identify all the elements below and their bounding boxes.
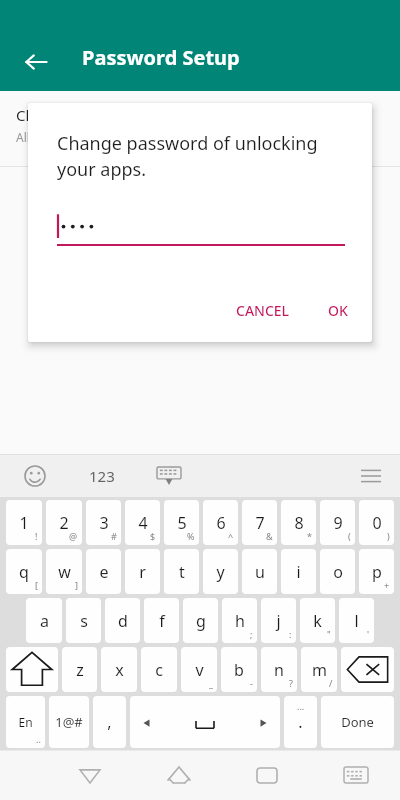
button[interactable]: Space	[130, 696, 280, 748]
button[interactable]: k	[300, 598, 335, 643]
button[interactable]: d	[105, 598, 140, 643]
staticText: 8	[294, 512, 304, 534]
staticText: *	[307, 530, 312, 542]
button[interactable]: Hide keyboard	[151, 461, 187, 491]
staticText: 2	[59, 512, 69, 534]
button[interactable]: x	[101, 647, 137, 692]
staticText: l	[354, 610, 359, 632]
button[interactable]: 4	[125, 500, 160, 545]
staticText: (	[348, 530, 351, 542]
staticText: %	[187, 530, 195, 542]
staticText: 7	[255, 512, 265, 534]
staticText: ,	[107, 711, 112, 733]
button[interactable]: Recents	[247, 755, 287, 795]
button[interactable]: q	[6, 549, 42, 594]
button[interactable]: z	[62, 647, 97, 692]
button[interactable]: Switch keyboard	[336, 755, 376, 795]
staticText: ;	[250, 628, 253, 640]
button[interactable]: Emoji	[20, 461, 50, 491]
staticText: -	[250, 677, 253, 689]
staticText: z	[76, 659, 84, 681]
staticText: @	[69, 530, 78, 542]
button[interactable]: n	[261, 647, 297, 692]
button[interactable]: ,	[93, 696, 126, 748]
staticText: r	[139, 561, 146, 583]
staticText: v	[195, 659, 204, 681]
staticText: 6	[216, 512, 226, 534]
button[interactable]: r	[125, 549, 160, 594]
button[interactable]: g	[183, 598, 218, 643]
button[interactable]: 0	[359, 500, 394, 545]
staticText: '	[367, 628, 370, 640]
button[interactable]: Backspace	[341, 647, 394, 692]
staticText: f	[159, 610, 165, 632]
button[interactable]: m	[301, 647, 337, 692]
staticText: u	[255, 561, 265, 583]
staticText: Change password of unlocking your apps.	[57, 131, 347, 181]
staticText: )	[387, 530, 390, 542]
button[interactable]: 1@#	[49, 696, 89, 748]
button[interactable]: Done	[321, 696, 394, 748]
button[interactable]: Back	[14, 40, 58, 84]
button[interactable]: v	[181, 647, 217, 692]
button[interactable]: p	[359, 549, 394, 594]
staticText: Password Setup	[82, 44, 240, 71]
button[interactable]: c	[141, 647, 177, 692]
button[interactable]: CANCEL	[227, 293, 299, 328]
button[interactable]: Back	[70, 755, 110, 795]
button[interactable]: h	[222, 598, 257, 643]
staticText: +	[384, 579, 390, 591]
staticText: 1	[19, 512, 29, 534]
button[interactable]	[57, 210, 345, 246]
button[interactable]: j	[261, 598, 296, 643]
staticText: p	[372, 561, 382, 583]
staticText: Done	[341, 713, 374, 731]
button[interactable]: u	[242, 549, 277, 594]
staticText: e	[99, 561, 109, 583]
staticText: 0	[372, 512, 382, 534]
button[interactable]: 9	[320, 500, 355, 545]
staticText: ...	[297, 700, 305, 712]
staticText: g	[196, 610, 206, 632]
button[interactable]: e	[86, 549, 121, 594]
button[interactable]: i	[281, 549, 316, 594]
button[interactable]: f	[144, 598, 179, 643]
button[interactable]: y	[203, 549, 238, 594]
button[interactable]: Shift	[6, 647, 58, 692]
staticText: En	[18, 714, 33, 730]
staticText: h	[235, 610, 245, 632]
button[interactable]: l	[339, 598, 374, 643]
staticText: t	[179, 561, 185, 583]
staticText: Allows you to change the unlock password	[16, 129, 255, 145]
staticText: o	[333, 561, 343, 583]
staticText: d	[118, 610, 128, 632]
button[interactable]: .	[284, 696, 317, 748]
staticText: y	[216, 561, 225, 583]
button[interactable]: 6	[203, 500, 238, 545]
button[interactable]: o	[320, 549, 355, 594]
staticText: Change password	[16, 105, 143, 125]
button[interactable]: Menu	[356, 461, 386, 491]
button[interactable]: t	[164, 549, 199, 594]
staticText: CANCEL	[236, 301, 290, 320]
button[interactable]: w	[46, 549, 82, 594]
button[interactable]: 7	[242, 500, 277, 545]
staticText: 5	[177, 512, 187, 534]
button[interactable]: 1	[6, 500, 42, 545]
button[interactable]: 8	[281, 500, 316, 545]
button[interactable]: 5	[164, 500, 199, 545]
button[interactable]: 3	[86, 500, 121, 545]
button[interactable]: 2	[46, 500, 82, 545]
button[interactable]: Home	[159, 755, 199, 795]
staticText: 9	[333, 512, 343, 534]
staticText: ?	[289, 677, 293, 689]
button[interactable]: b	[221, 647, 257, 692]
button[interactable]: En	[6, 696, 45, 748]
button[interactable]: a	[26, 598, 62, 643]
staticText: $	[150, 530, 156, 542]
button[interactable]: 123	[82, 460, 122, 492]
staticText: i	[296, 561, 301, 583]
button[interactable]: OK	[319, 293, 357, 328]
staticText: 123	[89, 466, 115, 486]
button[interactable]: s	[66, 598, 101, 643]
